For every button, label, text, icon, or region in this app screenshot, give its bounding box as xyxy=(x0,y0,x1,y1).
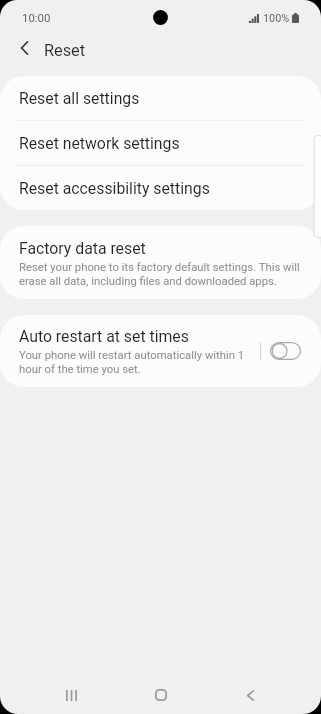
button[interactable]: Factory data reset xyxy=(0,226,321,299)
button[interactable]: Back xyxy=(223,676,277,714)
button[interactable]: Reset accessibility settings xyxy=(0,166,321,210)
staticText: Reset all settings xyxy=(19,89,140,108)
staticText: Reset accessibility settings xyxy=(19,179,210,198)
button[interactable]: Auto restart at set times xyxy=(0,315,260,387)
button[interactable]: Reset all settings xyxy=(0,76,321,120)
button[interactable]: Home xyxy=(134,676,188,714)
button[interactable]: Reset network settings xyxy=(0,121,321,165)
staticText: Factory data reset xyxy=(19,239,146,258)
staticText: 10:00 xyxy=(22,11,51,24)
staticText: Reset your phone to its factory default … xyxy=(19,261,305,288)
button[interactable]: Auto restart at set times toggle xyxy=(270,342,301,360)
staticText: 100% xyxy=(263,12,290,25)
button[interactable]: Recent apps xyxy=(44,676,98,714)
button[interactable]: Navigate up xyxy=(11,34,38,61)
staticText: Reset xyxy=(44,41,86,60)
staticText: Reset network settings xyxy=(19,134,180,153)
staticText: Auto restart at set times xyxy=(19,327,189,346)
staticText: Your phone will restart automatically wi… xyxy=(19,349,256,376)
